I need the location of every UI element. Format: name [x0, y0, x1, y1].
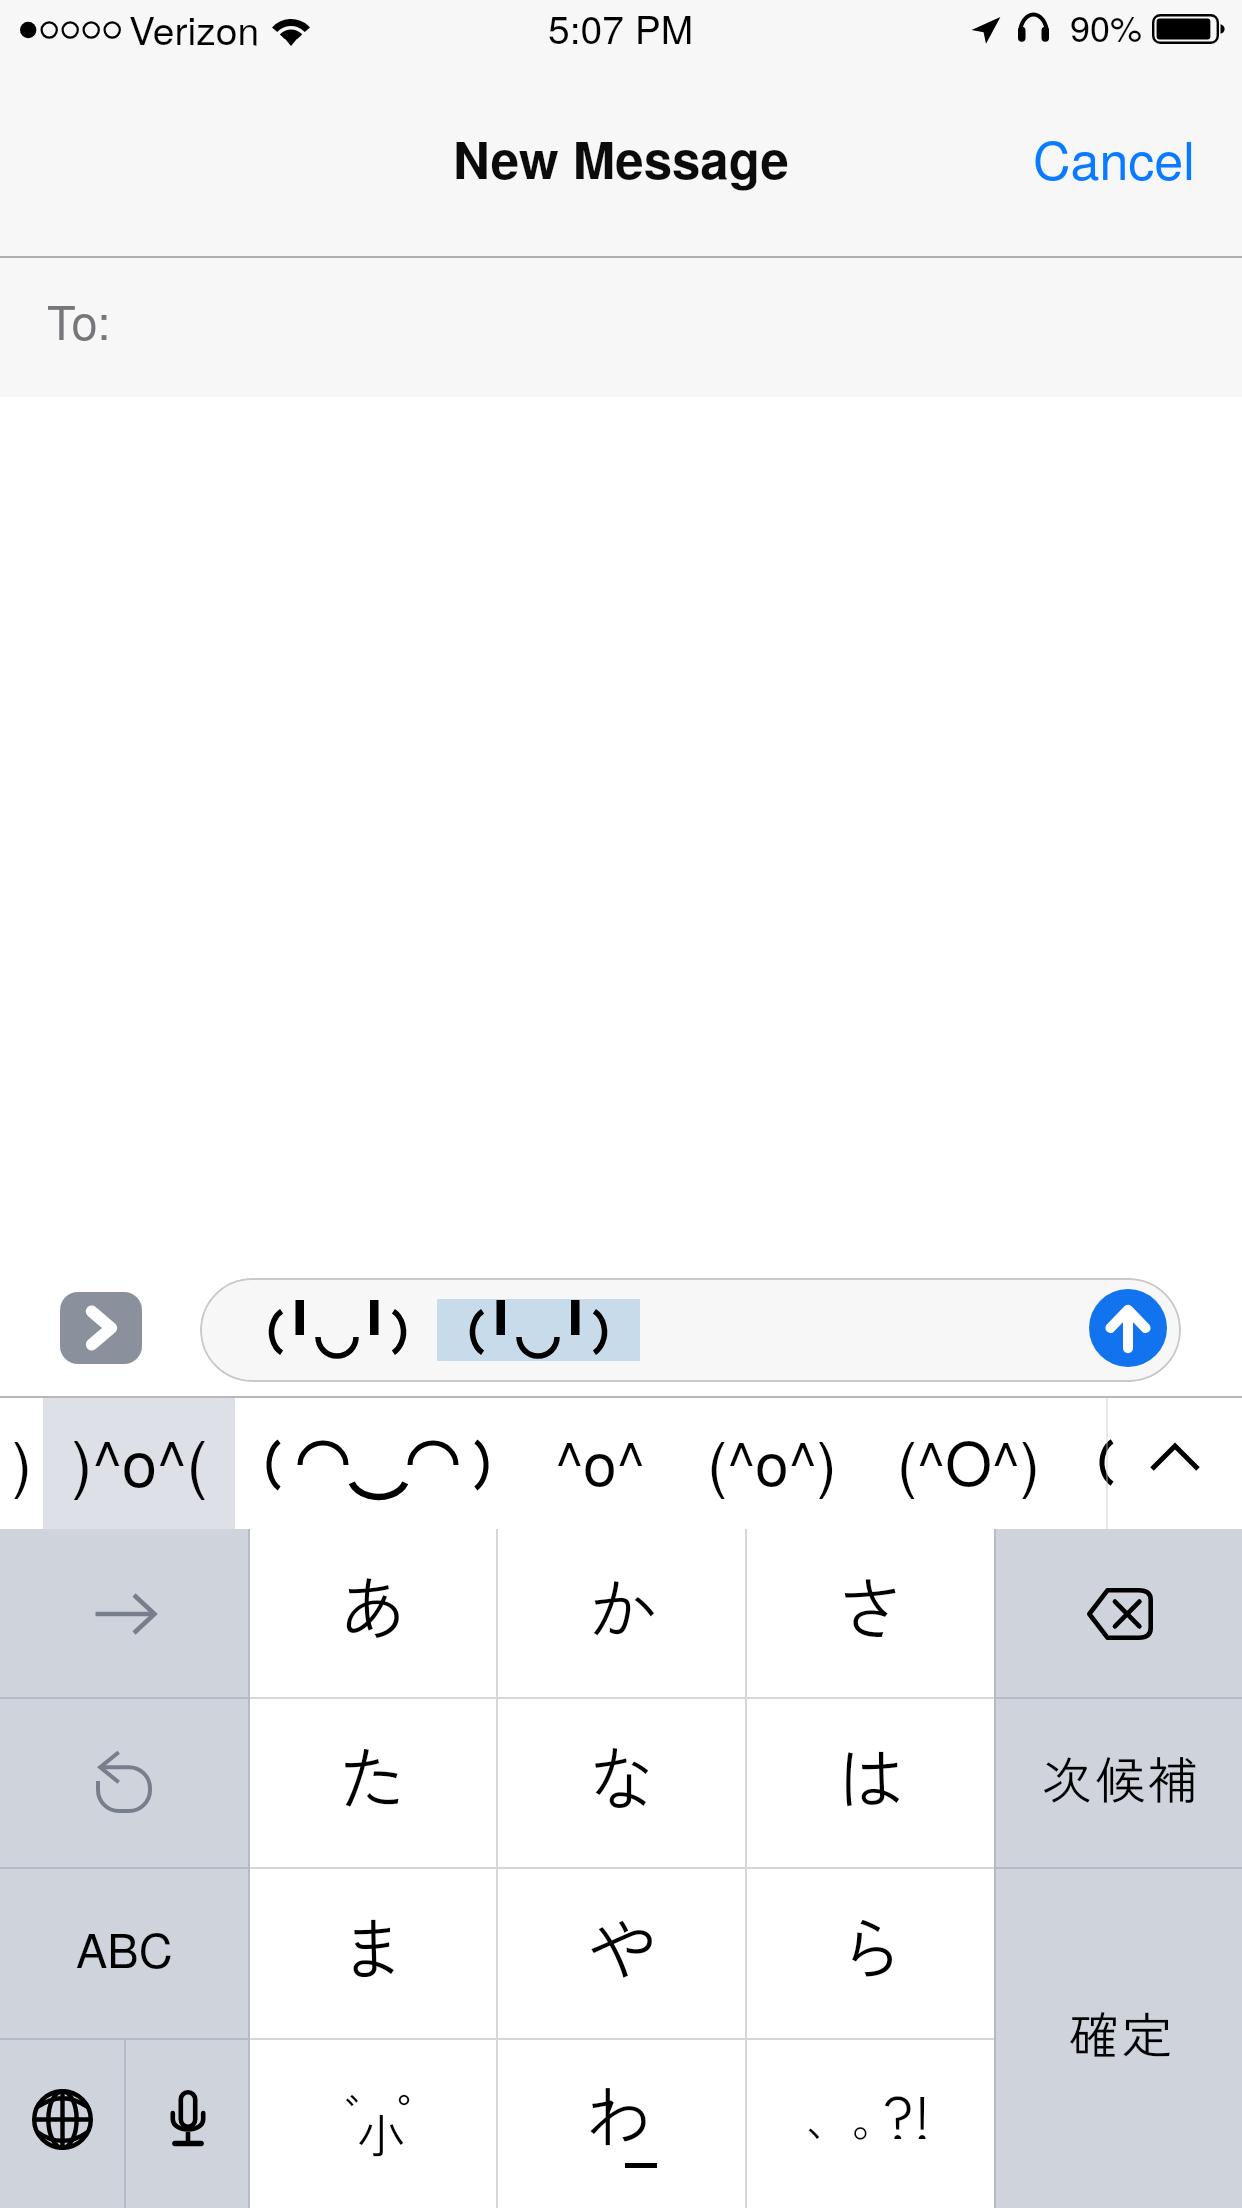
button[interactable]: [200, 1278, 1181, 1382]
button[interactable]: ら: [746, 1868, 995, 2039]
button[interactable]: Undo: [0, 1698, 249, 1868]
button[interactable]: [249, 1529, 497, 1698]
button[interactable]: わ: [497, 2039, 746, 2208]
staticText: 5:07 PM: [548, 0, 694, 55]
button[interactable]: [678, 1396, 866, 1529]
staticText: (^o^): [707, 1417, 837, 1503]
button[interactable]: Delete: [995, 1529, 1242, 1698]
staticText: Verizon: [129, 0, 260, 56]
button[interactable]: [522, 1396, 678, 1529]
button[interactable]: ゛: [249, 2039, 497, 2208]
staticText: ABC: [76, 1914, 173, 1981]
staticText: ^o^: [555, 1417, 645, 1503]
button[interactable]: [249, 1868, 497, 2039]
staticText: や: [587, 1894, 657, 1995]
button[interactable]: た: [249, 1698, 497, 1868]
button[interactable]: [249, 1698, 497, 1868]
staticText: )^o^(: [71, 1415, 208, 1505]
staticText: ): [12, 1417, 32, 1503]
button[interactable]: や: [497, 1868, 746, 2039]
staticText: ?!: [882, 2069, 931, 2139]
button[interactable]: [746, 1868, 995, 2039]
button[interactable]: Expand: [60, 1292, 142, 1364]
staticText: 次候補: [1042, 1741, 1201, 1813]
button[interactable]: Send: [1089, 1289, 1167, 1367]
staticText: ゜: [395, 2078, 448, 2153]
button[interactable]: [746, 1698, 995, 1868]
button[interactable]: [497, 2039, 746, 2208]
staticText: Cancel: [1033, 120, 1195, 194]
button[interactable]: な: [497, 1698, 746, 1868]
staticText: た: [338, 1724, 408, 1825]
staticText: さ: [836, 1554, 906, 1655]
staticText: ま: [338, 1894, 408, 1995]
staticText: か: [587, 1554, 657, 1655]
staticText: To:: [47, 286, 111, 353]
button[interactable]: Cancel: [1003, 102, 1242, 212]
button[interactable]: [1096, 1396, 1242, 1529]
staticText: 確定: [1069, 1996, 1175, 2068]
button[interactable]: [497, 1698, 746, 1868]
staticText: ゛: [343, 2078, 396, 2153]
button[interactable]: 、。: [746, 2039, 995, 2208]
button[interactable]: [746, 1529, 995, 1698]
button[interactable]: は: [746, 1698, 995, 1868]
button[interactable]: [866, 1396, 1096, 1529]
button[interactable]: [497, 1529, 746, 1698]
button[interactable]: [746, 2039, 995, 2208]
button[interactable]: [235, 1396, 522, 1529]
staticText: 、。: [805, 2084, 897, 2151]
button[interactable]: [497, 1868, 746, 2039]
button[interactable]: Dictation: [126, 2039, 249, 2208]
button[interactable]: Change keyboard: [0, 2039, 124, 2208]
button[interactable]: あ: [249, 1529, 497, 1698]
button[interactable]: さ: [746, 1529, 995, 1698]
button[interactable]: 次候補: [995, 1698, 1242, 1868]
button[interactable]: 確定: [995, 1868, 1242, 2208]
staticText: は: [836, 1724, 906, 1825]
staticText: (^O^): [897, 1417, 1040, 1503]
button[interactable]: か: [497, 1529, 746, 1698]
staticText: ら: [836, 1894, 906, 1995]
staticText: New Message: [453, 122, 789, 195]
staticText: 小: [357, 2098, 406, 2168]
button[interactable]: ま: [249, 1868, 497, 2039]
button[interactable]: [249, 2039, 497, 2208]
button[interactable]: ABC: [0, 1868, 249, 2039]
button[interactable]: [0, 1396, 43, 1529]
staticText: 90%: [1070, 1, 1143, 53]
staticText: わ: [583, 2062, 653, 2162]
button[interactable]: [0, 1529, 249, 1698]
button[interactable]: [43, 1396, 235, 1529]
staticText: あ: [338, 1554, 408, 1655]
staticText: な: [587, 1724, 657, 1825]
button[interactable]: To:: [0, 258, 1242, 397]
